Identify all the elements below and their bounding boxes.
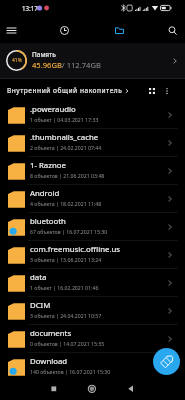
staticText: 4 объекта | 18.02.2021 11:48 <box>30 200 102 207</box>
staticText: 1 объект | 04.03.2021 17:33 <box>30 116 99 123</box>
staticText: 1- Raznoe <box>30 160 66 171</box>
button[interactable]: Search <box>163 21 182 40</box>
staticText: DCIM <box>30 300 51 311</box>
staticText: documents <box>30 328 72 339</box>
staticText: 41% <box>12 57 22 64</box>
staticText: com.freemusic.offline.us <box>30 244 121 255</box>
button[interactable]: 41% <box>0 43 185 78</box>
button[interactable]: DCIM <box>0 297 185 325</box>
button[interactable]: Clean up storage <box>153 348 180 375</box>
button[interactable]: Grid view <box>144 83 159 98</box>
button[interactable]: documents <box>0 325 185 353</box>
button[interactable]: Folders <box>110 21 129 40</box>
staticText: 8 объектов | 21.06.2021 03:48 <box>30 172 105 179</box>
staticText: bluetooth <box>30 216 66 227</box>
staticText: 1 объект | 16.02.2021 01:46 <box>30 284 99 291</box>
button[interactable]: More options <box>159 83 174 98</box>
button[interactable]: data <box>0 269 185 297</box>
button[interactable]: bluetooth <box>0 213 185 241</box>
staticText: 3 объекта | 24.04.2021 10:57 <box>30 312 102 319</box>
staticText: Android <box>30 188 60 199</box>
button[interactable]: Menu <box>2 21 21 40</box>
staticText: Внутренний общий накопитель <box>7 86 123 95</box>
staticText: .thumbnails_cache <box>30 132 99 143</box>
staticText: Память <box>32 50 56 59</box>
staticText: data <box>30 272 47 283</box>
staticText: 67 объектов | 16.07.2021 15:30 <box>30 228 108 235</box>
staticText: 0 объектов | 14.07.2021 15:55 <box>30 340 105 347</box>
button[interactable]: 1- Raznoe <box>0 157 185 185</box>
staticText: 3 объекта | 13.06.2021 13:24 <box>30 256 102 263</box>
button[interactable]: com.freemusic.offline.us <box>0 241 185 269</box>
button[interactable]: .poweraudio <box>0 101 185 129</box>
staticText: 45.96GB/ 112.74GB <box>32 60 101 70</box>
button[interactable]: Download <box>0 353 185 381</box>
staticText: 2 объекта | 24.02.2021 07:44 <box>30 144 102 151</box>
staticText: 13:17 <box>22 4 38 12</box>
button[interactable]: Android <box>0 185 185 213</box>
staticText: Download <box>30 356 68 367</box>
staticText: .poweraudio <box>30 104 76 115</box>
button[interactable]: .thumbnails_cache <box>0 129 185 157</box>
button[interactable]: Внутренний общий накопитель <box>7 86 130 95</box>
button[interactable]: Recent files <box>55 21 74 40</box>
staticText: 140 объектов | 16.07.2021 15:30 <box>30 368 111 375</box>
